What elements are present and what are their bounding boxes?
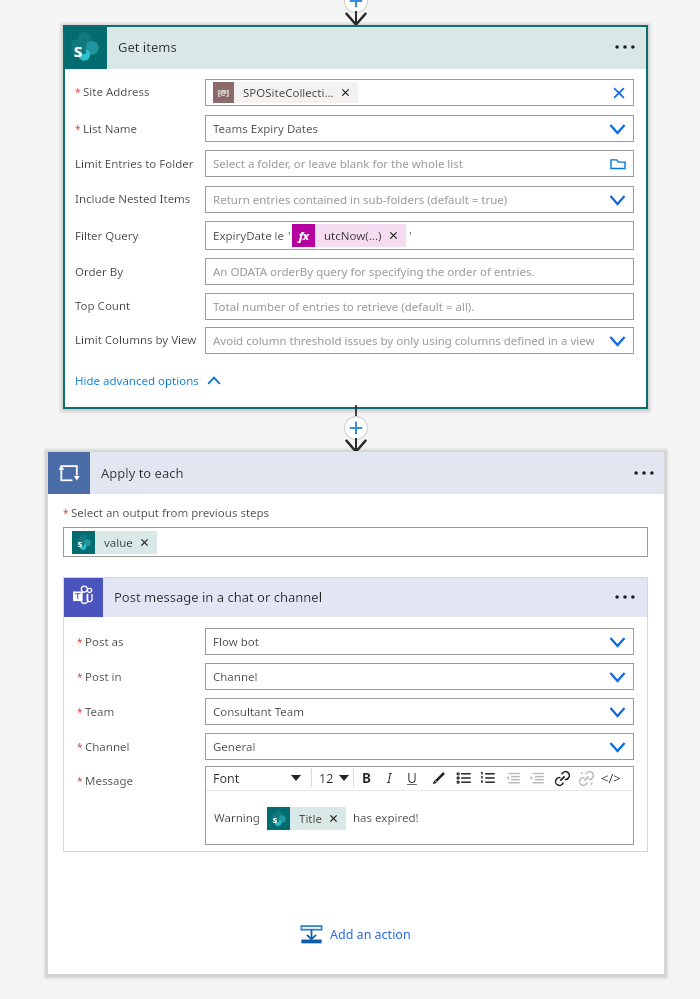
button[interactable]: B <box>362 769 371 787</box>
staticText: Consultant Team <box>213 704 305 720</box>
staticText: Limit Columns by View <box>75 332 197 348</box>
staticText: Flow bot <box>213 634 259 650</box>
staticText: Select an output from previous steps <box>71 505 270 521</box>
staticText: General <box>213 739 256 755</box>
button[interactable]: Add an action <box>300 924 411 945</box>
staticText: [@] <box>218 88 229 98</box>
button[interactable]: S <box>63 527 648 557</box>
staticText: utcNow(...) <box>324 228 382 244</box>
button[interactable]: I <box>387 769 392 787</box>
staticText: ExpiryDate le <box>213 228 285 244</box>
staticText: Post in <box>85 669 122 685</box>
staticText: ' <box>409 228 412 244</box>
staticText: </> <box>601 769 621 787</box>
staticText: Channel <box>213 669 258 685</box>
button[interactable]: Remove link <box>579 771 594 786</box>
staticText: Site Address <box>83 84 150 100</box>
staticText: B <box>362 769 371 787</box>
staticText: Limit Entries to Folder <box>75 156 194 172</box>
staticText: Warning <box>214 810 260 826</box>
staticText: fx <box>299 228 309 243</box>
staticText: Message <box>85 773 133 789</box>
staticText: * <box>77 705 83 719</box>
staticText: * <box>77 670 83 684</box>
staticText: S <box>273 815 278 825</box>
staticText: Include Nested Items <box>75 191 191 207</box>
staticText: Teams Expiry Dates <box>213 121 318 137</box>
staticText: * <box>77 774 83 788</box>
button[interactable]: Return entries contained in sub-folders … <box>205 186 634 213</box>
button[interactable]: Total number of entries to retrieve (def… <box>205 293 634 320</box>
button[interactable]: Consultant Team <box>205 698 634 725</box>
staticText: Total number of entries to retrieve (def… <box>213 299 475 315</box>
staticText: Return entries contained in sub-folders … <box>213 192 508 208</box>
button[interactable]: Bulleted list <box>457 771 471 785</box>
button[interactable]: ExpiryDate le <box>205 221 634 250</box>
button[interactable]: More options <box>615 592 635 602</box>
button[interactable]: An ODATA orderBy query for specifying th… <box>205 258 634 285</box>
button[interactable]: S <box>267 807 346 830</box>
staticText: List Name <box>83 121 138 137</box>
staticText: Font <box>213 770 240 787</box>
staticText: * <box>63 506 69 520</box>
staticText: value <box>104 535 133 551</box>
staticText: Get items <box>118 38 177 56</box>
staticText: S <box>74 41 83 61</box>
button[interactable]: 12 <box>319 770 334 787</box>
staticText: Avoid column threshold issues by only us… <box>213 333 595 349</box>
staticText: * <box>75 122 81 136</box>
button[interactable]: Font <box>213 770 240 787</box>
button[interactable]: More options <box>634 468 654 478</box>
button[interactable]: Increase indent <box>530 771 544 785</box>
button[interactable]: Numbered list <box>481 771 495 785</box>
button[interactable]: Insert a new step <box>336 0 376 28</box>
staticText: Add an action <box>330 926 411 943</box>
button[interactable]: </> <box>601 769 621 787</box>
staticText: An ODATA orderBy query for specifying th… <box>213 264 535 280</box>
button[interactable]: Insert a new step <box>336 405 376 455</box>
staticText: Top Count <box>75 298 131 314</box>
button[interactable]: [@] <box>205 79 634 106</box>
staticText: Apply to each <box>101 464 184 482</box>
button[interactable]: Select a folder, or leave blank for the … <box>205 150 634 177</box>
button[interactable]: Highlight <box>432 771 446 785</box>
button[interactable]: Decrease indent <box>506 771 520 785</box>
staticText: S <box>78 539 83 549</box>
button[interactable]: Flow bot <box>205 628 634 655</box>
staticText: 12 <box>319 770 334 787</box>
staticText: Channel <box>85 739 130 755</box>
button[interactable]: Apply to each <box>47 451 665 494</box>
staticText: * <box>77 635 83 649</box>
staticText: Order By <box>75 264 124 280</box>
staticText: U <box>407 769 417 787</box>
button[interactable]: More options <box>615 42 635 52</box>
staticText: * <box>77 740 83 754</box>
staticText: ' <box>288 228 291 244</box>
button[interactable]: Insert link <box>555 771 570 786</box>
staticText: Filter Query <box>75 228 139 244</box>
staticText: Hide advanced options <box>75 373 199 389</box>
staticText: Post as <box>85 634 124 650</box>
staticText: Select a folder, or leave blank for the … <box>213 156 463 172</box>
button[interactable]: Avoid column threshold issues by only us… <box>205 327 634 354</box>
button[interactable]: S <box>63 25 648 69</box>
button[interactable]: General <box>205 733 634 760</box>
staticText: Team <box>85 704 115 720</box>
button[interactable]: Channel <box>205 663 634 690</box>
staticText: * <box>75 85 81 99</box>
button[interactable]: Hide advanced options <box>75 373 221 389</box>
button[interactable]: U <box>407 769 417 787</box>
staticText: SPOSiteCollecti... <box>243 85 334 101</box>
staticText: Post message in a chat or channel <box>114 588 322 606</box>
staticText: I <box>387 769 392 787</box>
button[interactable]: Post message in a chat or channel <box>63 577 648 617</box>
button[interactable]: Teams Expiry Dates <box>205 115 634 142</box>
staticText: Title <box>299 811 322 827</box>
button[interactable]: S <box>72 531 157 554</box>
staticText: has expired! <box>353 810 419 826</box>
